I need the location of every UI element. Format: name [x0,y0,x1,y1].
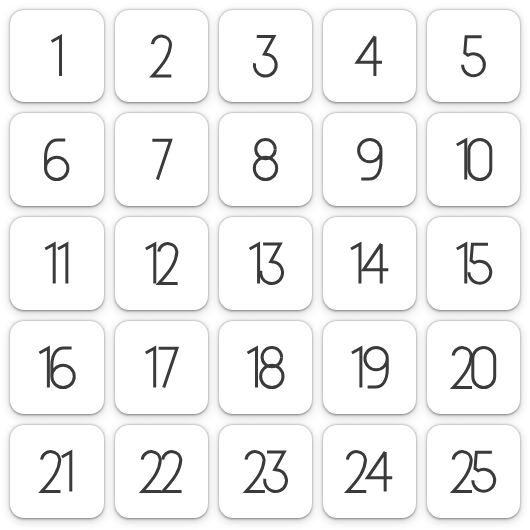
button[interactable]: Number 23 [219,425,312,518]
button[interactable]: Number 7 [115,113,208,206]
button[interactable]: Number 19 [323,321,416,414]
button[interactable]: Number 15 [427,217,520,310]
button[interactable]: Number 18 [219,321,312,414]
button[interactable]: Number 20 [427,321,520,414]
button[interactable]: Number 14 [323,217,416,310]
button[interactable]: Number 10 [427,113,520,206]
button[interactable]: Number 25 [427,425,520,518]
button[interactable]: Number 12 [115,217,208,310]
button[interactable]: Number 3 [219,10,312,102]
button[interactable]: Number 16 [10,321,104,414]
button[interactable]: Number 6 [10,113,104,206]
button[interactable]: Number 21 [10,425,104,518]
button[interactable]: Number 1 [10,10,104,102]
button[interactable]: Number 8 [219,113,312,206]
button[interactable]: Number 17 [115,321,208,414]
button[interactable]: Number 2 [115,10,208,102]
button[interactable]: Number 5 [427,10,520,102]
button[interactable]: Number 11 [10,217,104,310]
button[interactable]: Number 13 [219,217,312,310]
button[interactable]: Number 24 [323,425,416,518]
button[interactable]: Number 4 [323,10,416,102]
button[interactable]: Number 9 [323,113,416,206]
button[interactable]: Number 22 [115,425,208,518]
